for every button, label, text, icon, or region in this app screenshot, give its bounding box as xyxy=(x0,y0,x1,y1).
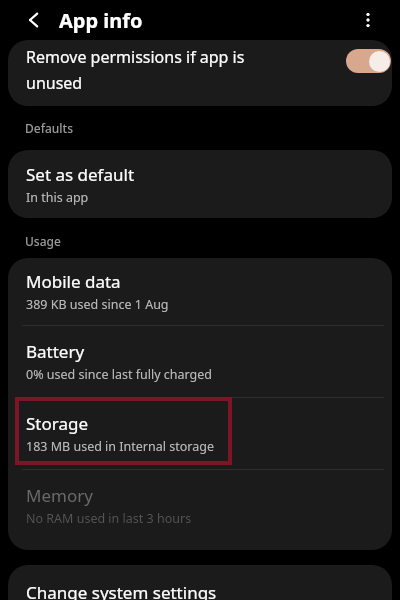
staticText: 183 MB used in Internal storage xyxy=(26,438,214,455)
button[interactable]: Remove permissions toggle xyxy=(346,49,391,73)
button[interactable]: Storage xyxy=(8,398,392,469)
staticText: Usage xyxy=(25,233,61,249)
staticText: 0% used since last fully charged xyxy=(26,366,213,383)
button[interactable]: Remove permissions if app is xyxy=(8,40,392,106)
staticText: Storage xyxy=(26,412,89,435)
staticText: Set as default xyxy=(26,163,135,186)
staticText: Battery xyxy=(26,340,85,363)
staticText: Remove permissions if app is xyxy=(26,46,245,68)
button[interactable]: Memory xyxy=(8,470,392,541)
staticText: Change system settings xyxy=(26,581,217,600)
staticText: Defaults xyxy=(25,120,74,136)
button[interactable]: Change system settings xyxy=(8,565,392,600)
staticText: Memory xyxy=(26,484,93,507)
button[interactable]: Battery xyxy=(8,326,392,397)
button[interactable]: Mobile data xyxy=(8,258,392,325)
staticText: 389 KB used since 1 Aug xyxy=(26,296,169,313)
staticText: Mobile data xyxy=(26,270,121,293)
button[interactable]: Back xyxy=(14,0,54,40)
button[interactable]: More options xyxy=(348,0,388,40)
staticText: App info xyxy=(59,7,143,34)
button[interactable]: Set as default xyxy=(8,150,392,218)
staticText: No RAM used in last 3 hours xyxy=(26,510,192,527)
staticText: unused xyxy=(26,72,83,94)
staticText: In this app xyxy=(26,189,89,206)
